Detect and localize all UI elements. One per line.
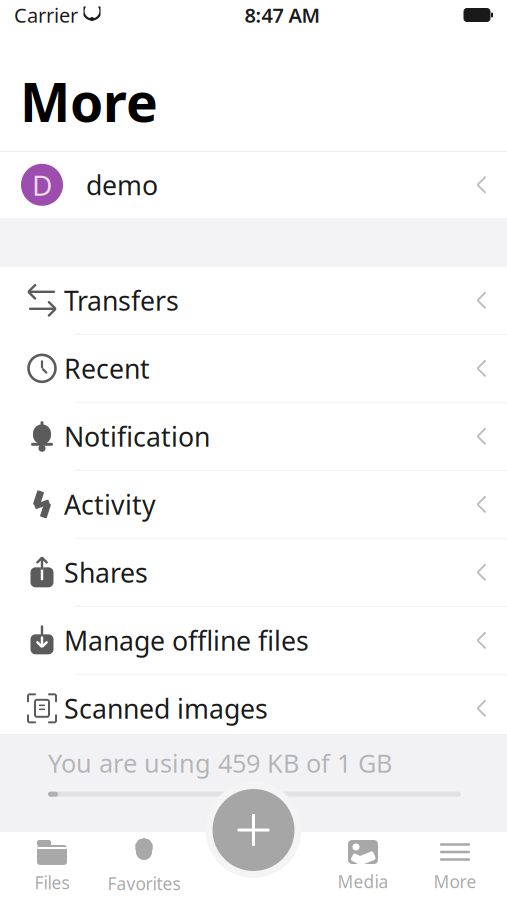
staticText: Notification [64, 419, 210, 454]
button[interactable]: Add [205, 782, 301, 878]
button[interactable]: More [409, 837, 501, 895]
staticText: Shares [64, 555, 148, 590]
staticText: Carrier [14, 2, 78, 28]
button[interactable]: Scanned images [0, 675, 507, 742]
button[interactable]: Transfers [0, 267, 507, 335]
button[interactable]: Files [6, 837, 98, 895]
staticText: Files [34, 871, 69, 894]
staticText: Scanned images [64, 691, 268, 726]
button[interactable]: Recent [0, 335, 507, 403]
staticText: Transfers [64, 283, 179, 318]
staticText: More [433, 870, 476, 893]
staticText: Recent [64, 351, 150, 386]
button[interactable]: Media [317, 837, 409, 895]
button[interactable]: Shares [0, 539, 507, 607]
button[interactable]: Notification [0, 403, 507, 471]
staticText: 8:47 AM [244, 2, 320, 28]
button[interactable]: Manage offline files [0, 607, 507, 675]
button[interactable]: D [0, 152, 507, 218]
staticText: Media [337, 870, 388, 893]
staticText: Manage offline files [64, 623, 309, 658]
staticText: You are using 459 KB of 1 GB [48, 746, 392, 780]
staticText: Favorites [107, 872, 180, 895]
button[interactable]: Favorites [98, 837, 190, 895]
button[interactable]: Activity [0, 471, 507, 539]
staticText: Activity [64, 487, 156, 522]
staticText: More [20, 66, 158, 137]
staticText: demo [86, 167, 158, 202]
staticText: D [32, 166, 52, 203]
